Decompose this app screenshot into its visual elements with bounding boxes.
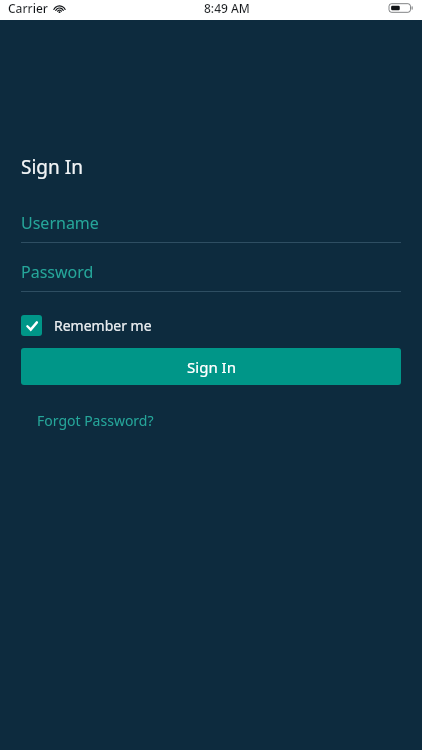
button[interactable]: Forgot Password? xyxy=(37,411,154,430)
staticText: Password xyxy=(21,261,94,283)
staticText: Sign In xyxy=(187,357,236,377)
staticText: Remember me xyxy=(54,316,152,335)
other: Wi-Fi signal xyxy=(53,2,66,15)
button[interactable]: Sign In xyxy=(21,348,401,385)
staticText: Sign In xyxy=(21,154,83,180)
staticText: 8:49 AM xyxy=(204,0,250,16)
button[interactable]: Username xyxy=(21,212,401,243)
staticText: Username xyxy=(21,212,99,234)
button[interactable]: Remember me xyxy=(21,315,152,336)
other: Battery xyxy=(389,2,414,14)
button[interactable]: Password xyxy=(21,261,401,292)
staticText: Carrier xyxy=(8,0,48,16)
staticText: Forgot Password? xyxy=(37,411,154,430)
